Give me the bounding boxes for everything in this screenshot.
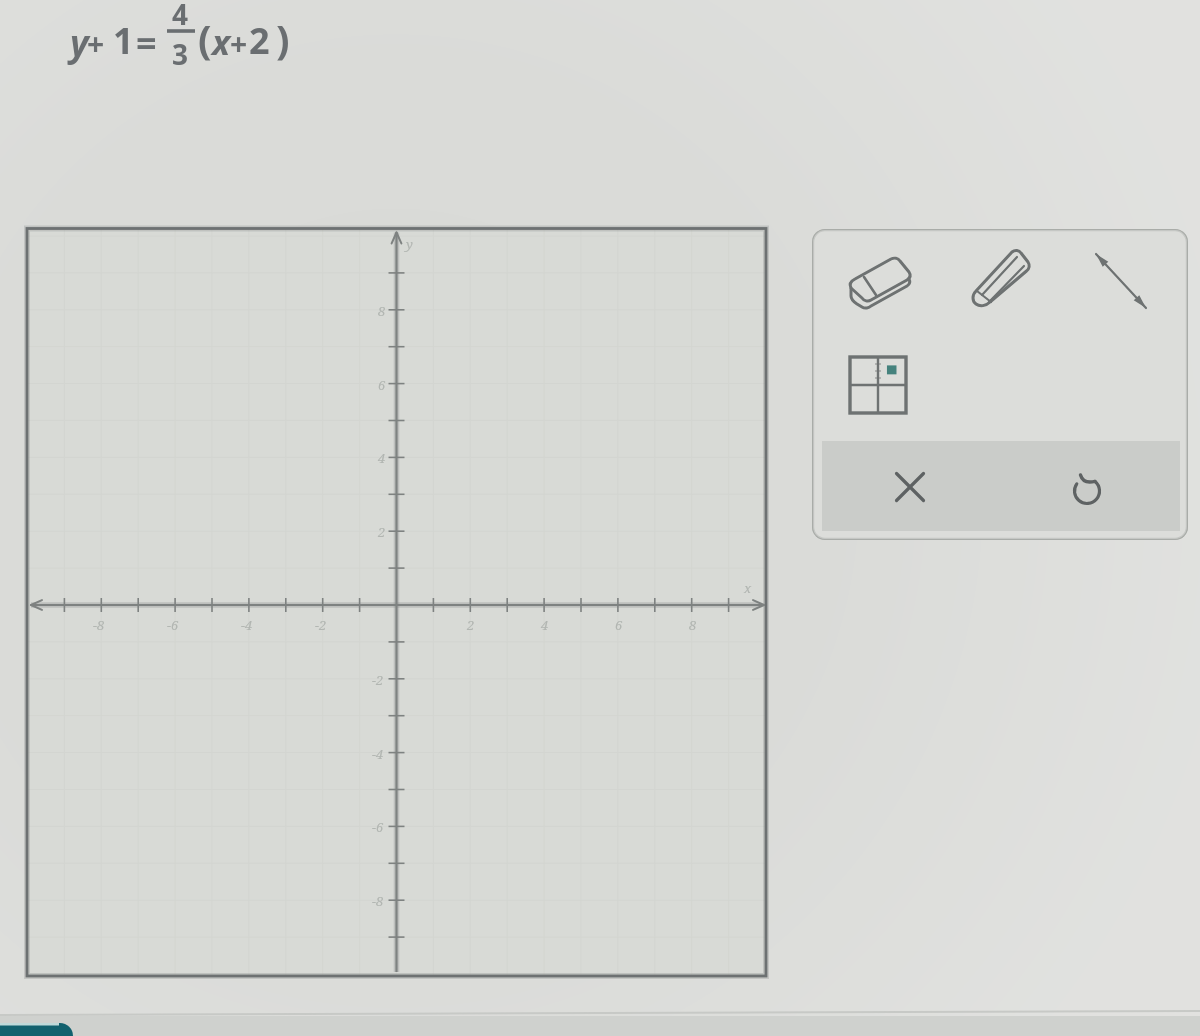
staticText: 2 bbox=[249, 16, 270, 65]
button[interactable]: Line bbox=[1088, 248, 1156, 318]
staticText: -4 bbox=[372, 745, 384, 763]
staticText: -2 bbox=[372, 671, 384, 689]
staticText: 1 bbox=[113, 16, 134, 65]
staticText: -6 bbox=[167, 616, 179, 634]
button[interactable]: Close bbox=[886, 463, 934, 511]
staticText: x bbox=[212, 19, 231, 65]
button[interactable]: Graphing area bbox=[27, 229, 766, 977]
button[interactable]: Undo bbox=[1063, 465, 1111, 513]
staticText: 3 bbox=[172, 35, 189, 73]
staticText: -2 bbox=[315, 616, 327, 634]
staticText: 4 bbox=[378, 449, 386, 467]
staticText: -8 bbox=[372, 892, 384, 910]
staticText: ) bbox=[276, 11, 290, 65]
button[interactable]: Open drawer bbox=[0, 1023, 73, 1036]
button[interactable]: Eraser bbox=[847, 256, 915, 312]
staticText: 8 bbox=[689, 616, 697, 634]
staticText: -6 bbox=[372, 818, 384, 836]
staticText: + bbox=[87, 23, 105, 64]
staticText: -8 bbox=[93, 616, 105, 634]
staticText: y bbox=[70, 18, 89, 67]
staticText: -4 bbox=[241, 616, 253, 634]
staticText: y bbox=[406, 235, 413, 253]
staticText: 6 bbox=[378, 376, 386, 394]
staticText: 4 bbox=[172, 0, 189, 33]
staticText: 8 bbox=[378, 302, 386, 320]
staticText: x bbox=[744, 579, 752, 597]
staticText: = bbox=[136, 18, 157, 67]
staticText: 4 bbox=[541, 616, 549, 634]
button[interactable]: Graph bbox=[848, 355, 908, 415]
staticText: 2 bbox=[467, 616, 475, 634]
staticText: 6 bbox=[615, 616, 623, 634]
staticText: ( bbox=[198, 11, 212, 65]
button[interactable]: Pencil bbox=[968, 250, 1032, 316]
staticText: 2 bbox=[378, 523, 386, 541]
staticText: + bbox=[230, 23, 248, 64]
